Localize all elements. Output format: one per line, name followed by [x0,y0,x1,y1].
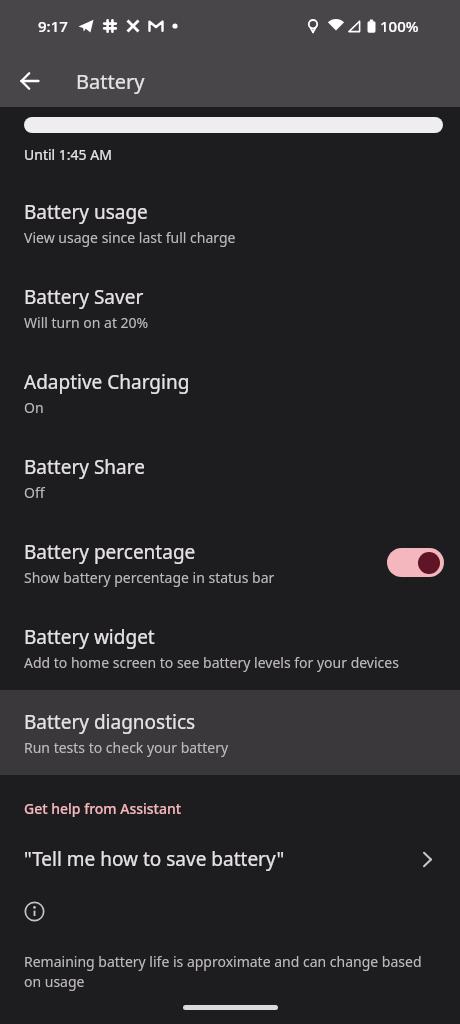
staticText: On [24,398,44,417]
button[interactable]: "Tell me how to save battery" [0,846,460,872]
staticText: 100% [380,16,419,36]
staticText: "Tell me how to save battery" [24,846,422,872]
staticText: Adaptive Charging [24,369,190,395]
staticText: Will turn on at 20% [24,313,149,332]
staticText: Show battery percentage in status bar [24,568,275,587]
button[interactable]: Battery widget [0,605,460,690]
staticText: View usage since last full charge [24,228,236,247]
staticText: Add to home screen to see battery levels… [24,653,399,672]
button[interactable]: Battery diagnostics [0,690,460,775]
button[interactable]: Battery Saver [0,265,460,350]
button[interactable]: Battery percentage [0,520,460,605]
staticText: Battery widget [24,624,155,650]
staticText: Run tests to check your battery [24,738,229,757]
button[interactable]: Battery Share [0,435,460,520]
staticText: Battery Share [24,454,145,480]
staticText: Off [24,483,45,502]
staticText: Get help from Assistant [24,799,182,818]
staticText: Battery [76,68,145,95]
button[interactable] [387,548,444,577]
button[interactable]: Adaptive Charging [0,350,460,435]
staticText: Battery diagnostics [24,709,196,735]
staticText: Battery percentage [24,539,196,565]
staticText: Battery Saver [24,284,144,310]
staticText: 9:17 [38,16,68,36]
staticText: Battery usage [24,199,148,225]
staticText: Remaining battery life is approximate an… [24,952,436,992]
button[interactable] [10,61,50,101]
button[interactable]: Battery usage [0,180,460,265]
staticText: Until 1:45 AM [24,145,112,164]
